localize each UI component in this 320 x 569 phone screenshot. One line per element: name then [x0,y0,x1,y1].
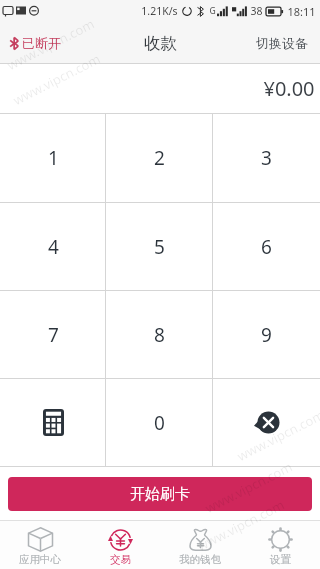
staticText: 交易 [110,553,131,566]
staticText: 收款 [144,33,177,54]
staticText: www.vipcn.com [234,405,320,465]
staticText: 7 [48,322,59,348]
button[interactable]: 1 [0,114,106,202]
staticText: 1 [48,145,59,171]
staticText: 2 [154,145,165,171]
button[interactable]: 切换设备 [246,22,320,64]
staticText: 1.21K/s [141,4,178,18]
staticText: 38 [250,4,263,18]
button[interactable]: 设置 [240,524,320,569]
staticText: 设置 [270,553,291,566]
staticText: ¥0.00 [263,75,315,102]
button[interactable]: 3 [213,114,320,202]
button[interactable]: 交易 [80,524,160,569]
button[interactable]: 8 [106,291,213,378]
staticText: 5 [154,234,165,260]
staticText: 4 [48,234,59,260]
staticText: www.vipcn.com [194,495,288,555]
button[interactable]: 0 [106,379,213,466]
staticText: 6 [261,234,272,260]
staticText: G [209,5,216,17]
button[interactable]: 7 [0,291,106,378]
button[interactable]: 9 [213,291,320,378]
staticText: 3 [261,145,272,171]
staticText: 8 [154,322,165,348]
button[interactable]: 开始刷卡 [8,477,312,511]
button[interactable]: Calculator [0,379,106,466]
staticText: 切换设备 [256,35,308,51]
button[interactable]: 2 [106,114,213,202]
staticText: 我的钱包 [179,553,221,566]
button[interactable]: 5 [106,203,213,290]
button[interactable]: 应用中心 [0,524,80,569]
staticText: 开始刷卡 [130,485,190,504]
staticText: 应用中心 [19,553,61,566]
staticText: www.vipcn.com [10,49,104,109]
button[interactable]: 已断开 [0,22,69,64]
staticText: 0 [154,410,165,436]
staticText: www.vipcn.com [202,457,296,517]
staticText: www.vipcn.com [4,14,98,74]
staticText: 9 [261,322,272,348]
staticText: 18:11 [287,4,316,19]
button[interactable]: 6 [213,203,320,290]
button[interactable]: 我的钱包 [160,524,240,569]
staticText: 已断开 [22,35,61,51]
button[interactable]: 4 [0,203,106,290]
button[interactable]: Delete [213,379,320,466]
